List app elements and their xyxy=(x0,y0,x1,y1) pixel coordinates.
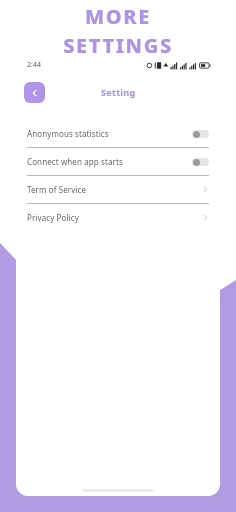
staticText: Privacy Policy xyxy=(27,212,79,223)
button[interactable]: Back xyxy=(24,82,45,103)
button[interactable]: Term of Service xyxy=(16,176,220,203)
staticText: Term of Service xyxy=(27,184,87,195)
staticText: SETTINGS xyxy=(63,32,173,59)
staticText: MORE xyxy=(85,3,151,30)
staticText: Connect when app starts xyxy=(27,156,123,167)
button[interactable]: Anonymous statistics xyxy=(16,120,220,147)
staticText: Setting xyxy=(101,86,136,98)
staticText: Anonymous statistics xyxy=(27,128,109,139)
button[interactable]: Connect when app starts xyxy=(16,148,220,175)
staticText: 2:44 xyxy=(27,60,41,70)
button[interactable]: Privacy Policy xyxy=(16,204,220,231)
